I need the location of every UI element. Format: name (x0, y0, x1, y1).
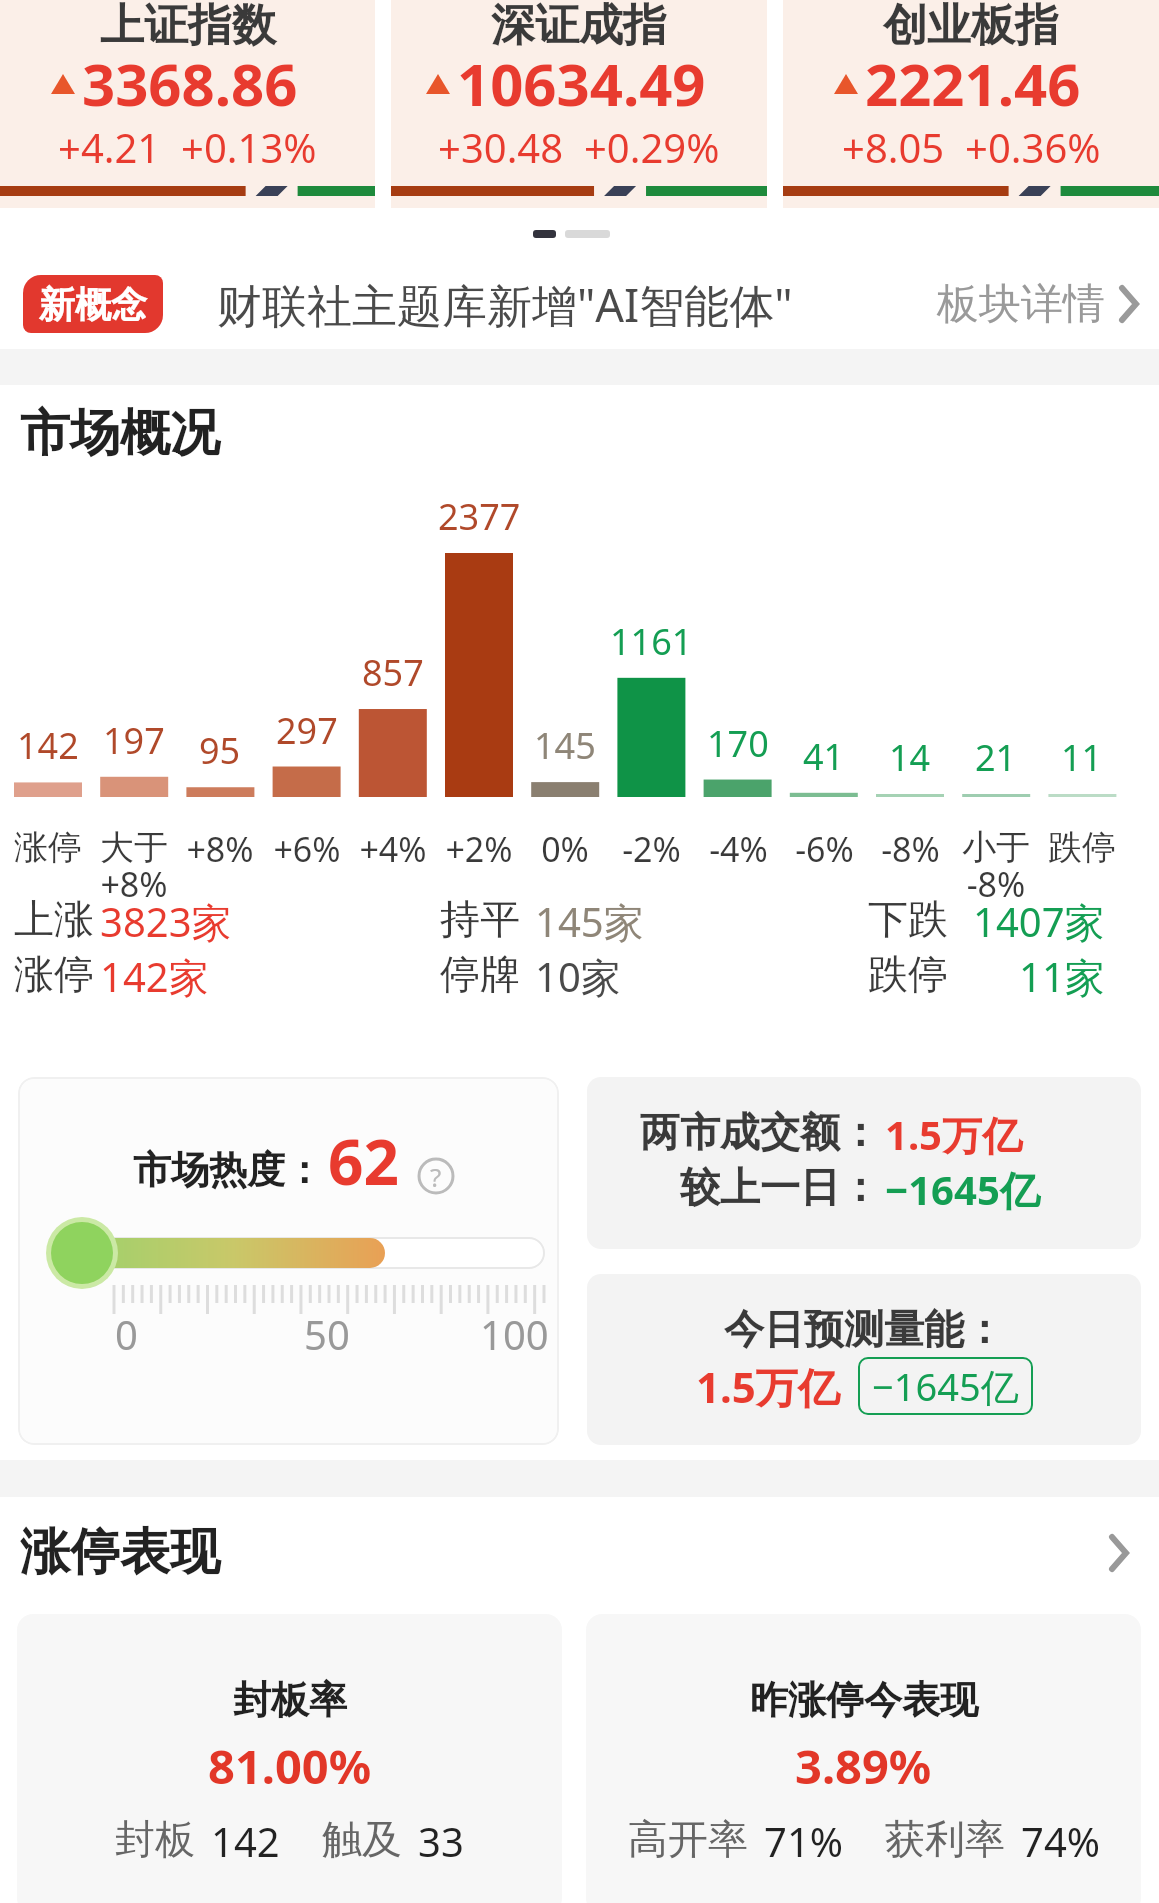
staticText: 142家 (100, 949, 209, 1004)
staticText: 3.89% (795, 1734, 932, 1798)
staticText: 停牌 (440, 949, 520, 999)
button[interactable]: 涨停表现 (20, 1521, 1129, 1584)
staticText: 142 (211, 1814, 280, 1868)
staticText: +4.21 +0.13% (58, 120, 317, 174)
staticText: 市场概况 (20, 402, 220, 465)
staticText: 857 (362, 648, 424, 697)
staticText: 1407家 (973, 894, 1105, 949)
staticText: 触及 (322, 1814, 402, 1864)
staticText: 上涨 (14, 894, 94, 944)
staticText: +8.05 +0.36% (842, 120, 1101, 174)
button[interactable]: 两市成交额： (587, 1077, 1141, 1249)
staticText: 142 (17, 721, 79, 770)
staticText: 涨停表现 (20, 1521, 220, 1584)
staticText: +6% (273, 826, 341, 872)
staticText: 2221.46 (865, 44, 1081, 123)
button[interactable]: 昨涨停今表现 (586, 1614, 1141, 1903)
staticText: 145家 (535, 894, 644, 949)
staticText: 170 (707, 719, 769, 768)
staticText: 上证指数 (100, 0, 276, 53)
staticText: ? (430, 1159, 442, 1194)
staticText: 涨停 (14, 826, 82, 869)
staticText: +4% (359, 826, 427, 872)
staticText: 95 (199, 726, 241, 775)
button[interactable]: 封板率 (17, 1614, 562, 1903)
staticText: 0% (541, 826, 589, 872)
staticText: 11 (1061, 733, 1103, 782)
staticText: 封板率 (233, 1676, 347, 1724)
staticText: 10634.49 (457, 44, 706, 123)
staticText: +30.48 +0.29% (438, 120, 720, 174)
staticText: 1.5万亿 (885, 1107, 1022, 1162)
staticText: 10家 (535, 949, 621, 1004)
staticText: 14 (889, 733, 931, 782)
staticText: −1645亿 (872, 1360, 1019, 1412)
button[interactable]: 深证成指 (391, 0, 767, 208)
staticText: -8% (881, 826, 940, 872)
staticText: 1161 (610, 617, 693, 666)
staticText: 深证成指 (491, 0, 667, 53)
staticText: 81.00% (208, 1734, 372, 1798)
staticText: 2377 (438, 492, 521, 541)
staticText: 持平 (440, 894, 520, 944)
button[interactable]: 新概念 (23, 251, 1139, 349)
staticText: 0 (115, 1307, 138, 1361)
staticText: 封板 (115, 1814, 195, 1864)
staticText: 74% (1021, 1814, 1100, 1868)
button[interactable]: 创业板指 (783, 0, 1159, 208)
staticText: 1.5万亿 (696, 1358, 840, 1415)
staticText: 50 (304, 1307, 350, 1361)
button[interactable]: 市场热度： (18, 1077, 559, 1445)
staticText: 297 (276, 706, 338, 755)
staticText: 71% (764, 1814, 843, 1868)
staticText: +2% (445, 826, 513, 872)
staticText: 41 (803, 732, 845, 781)
staticText: −1645亿 (885, 1162, 1040, 1217)
staticText: 财联社主题库新增"AI智能体" (217, 274, 793, 335)
staticText: 较上一日： (680, 1162, 880, 1212)
staticText: 昨涨停今表现 (750, 1676, 978, 1724)
staticText: 下跌 (868, 894, 948, 944)
staticText: 板块详情 (937, 278, 1105, 331)
staticText: 今日预测量能： (724, 1304, 1004, 1354)
staticText: 3368.86 (82, 44, 298, 123)
staticText: 62 (328, 1119, 399, 1203)
staticText: 大于 +8% (100, 826, 168, 907)
staticText: 跌停 (868, 949, 948, 999)
staticText: -4% (709, 826, 768, 872)
staticText: 197 (103, 716, 165, 765)
staticText: -6% (795, 826, 854, 872)
staticText: 145 (534, 721, 596, 770)
button[interactable]: 上证指数 (0, 0, 375, 208)
staticText: 获利率 (885, 1814, 1005, 1864)
staticText: 两市成交额： (640, 1107, 880, 1157)
staticText: 21 (975, 733, 1017, 782)
staticText: 33 (418, 1814, 464, 1868)
staticText: 新概念 (39, 282, 147, 327)
staticText: +8% (186, 826, 254, 872)
staticText: -2% (622, 826, 681, 872)
staticText: 涨停 (14, 949, 94, 999)
staticText: 小于 -8% (962, 826, 1030, 907)
button[interactable]: 今日预测量能： (587, 1274, 1141, 1445)
staticText: 100 (480, 1307, 549, 1361)
staticText: 11家 (1019, 949, 1105, 1004)
staticText: 高开率 (628, 1814, 748, 1864)
staticText: 市场热度： (133, 1146, 323, 1194)
staticText: 跌停 (1048, 826, 1116, 869)
staticText: 创业板指 (883, 0, 1059, 53)
staticText: 3823家 (100, 894, 232, 949)
